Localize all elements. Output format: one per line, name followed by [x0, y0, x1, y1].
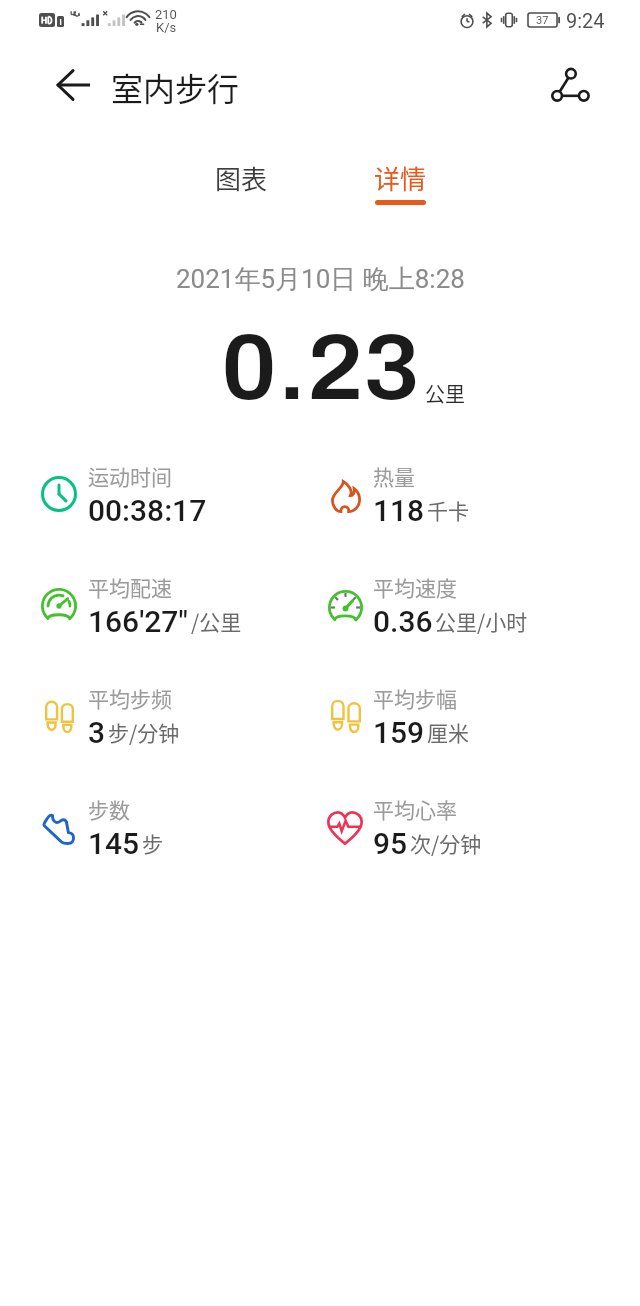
- staticText: 运动时间: [88, 461, 172, 491]
- button[interactable]: 平均步频: [38, 678, 308, 750]
- button[interactable]: 步数: [38, 789, 308, 861]
- staticText: 平均心率: [373, 794, 457, 824]
- button[interactable]: Back: [50, 61, 98, 109]
- button[interactable]: 详情: [320, 151, 480, 205]
- staticText: 平均步幅: [373, 683, 457, 713]
- staticText: 166'27": [88, 604, 189, 639]
- staticText: 厘米: [427, 717, 469, 747]
- staticText: 37: [536, 14, 549, 27]
- button[interactable]: 运动时间: [38, 456, 308, 528]
- button[interactable]: 热量: [323, 456, 593, 528]
- staticText: 9:24: [566, 9, 605, 32]
- button[interactable]: Share: [547, 62, 593, 108]
- staticText: 159: [373, 715, 425, 750]
- staticText: 0.23: [221, 317, 420, 418]
- staticText: 145: [88, 826, 140, 861]
- staticText: 2021年5月10日 晚上8:28: [176, 263, 465, 296]
- staticText: 平均速度: [373, 572, 457, 602]
- staticText: /公里: [191, 606, 242, 636]
- staticText: 千卡: [427, 495, 469, 525]
- staticText: 平均配速: [88, 572, 172, 602]
- staticText: 次/分钟: [410, 828, 482, 858]
- button[interactable]: 平均配速: [38, 567, 308, 639]
- staticText: 热量: [373, 461, 415, 491]
- button[interactable]: 平均心率: [323, 789, 593, 861]
- button[interactable]: 图表: [161, 151, 321, 205]
- staticText: 室内步行: [111, 64, 240, 110]
- staticText: 详情: [374, 159, 427, 197]
- staticText: 00:38:17: [88, 493, 207, 528]
- staticText: 步: [142, 828, 163, 858]
- staticText: K/s: [156, 20, 177, 35]
- staticText: 210: [155, 7, 177, 22]
- staticText: 公里: [425, 379, 465, 408]
- staticText: 95: [373, 826, 408, 861]
- staticText: 0.36: [373, 604, 433, 639]
- staticText: 平均步频: [88, 683, 172, 713]
- staticText: 步/分钟: [108, 717, 180, 747]
- staticText: 3: [88, 715, 106, 750]
- staticText: 公里/小时: [435, 606, 528, 636]
- button[interactable]: 平均速度: [323, 567, 593, 639]
- staticText: 步数: [88, 794, 130, 824]
- staticText: 图表: [215, 159, 268, 197]
- staticText: 118: [373, 493, 425, 528]
- button[interactable]: 平均步幅: [323, 678, 593, 750]
